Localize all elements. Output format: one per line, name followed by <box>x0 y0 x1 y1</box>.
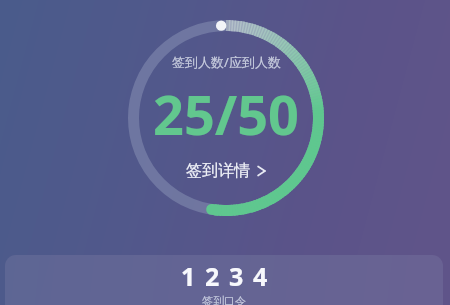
button[interactable]: 签到详情 <box>180 159 272 183</box>
staticText: 3 <box>229 259 244 293</box>
staticText: 25/50 <box>153 77 299 151</box>
staticText: 4 <box>253 259 268 293</box>
button[interactable]: 签到口令 <box>5 255 443 305</box>
staticText: 2 <box>205 259 220 293</box>
staticText: 签到人数/应到人数 <box>172 53 281 71</box>
staticText: 1 <box>181 259 196 293</box>
staticText: 签到口令 <box>202 294 246 305</box>
staticText: 签到详情 <box>186 161 250 181</box>
